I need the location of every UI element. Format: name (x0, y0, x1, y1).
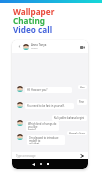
staticText: online (31, 47, 38, 50)
staticText: I'm pleased to introduce myself to you t… (29, 136, 63, 144)
staticText: Hamalu Jison (69, 132, 85, 134)
button[interactable]: Which kind of songs do you like again? (26, 121, 59, 131)
button[interactable]: Hamalu Jison (67, 131, 87, 135)
button[interactable]: Video call (79, 44, 85, 50)
staticText: Chating (13, 15, 45, 26)
button[interactable]: Home (38, 161, 44, 167)
button[interactable]: Back (17, 44, 22, 49)
button[interactable]: Send (79, 153, 85, 159)
button[interactable]: Hi! How are you? (25, 87, 72, 93)
button[interactable]: Hey (78, 85, 87, 89)
button[interactable]: Kuli yakhe bahasa begini (52, 115, 87, 121)
staticText: You need to be fast in yourself. (27, 104, 65, 108)
staticText: Hi! How are you? (27, 88, 48, 92)
staticText: Fine (79, 100, 85, 104)
button[interactable]: Fine (77, 99, 87, 105)
button[interactable]: Recent apps (45, 161, 51, 167)
staticText: Anna Tanya (31, 43, 47, 47)
button[interactable]: I'm pleased to introduce myself to you t… (27, 135, 65, 145)
button[interactable]: Back (30, 161, 36, 167)
staticText: Hey (80, 86, 85, 88)
staticText: Kuli yakhe bahasa begini (54, 116, 85, 120)
button[interactable]: You need to be fast in yourself. (25, 103, 74, 109)
staticText: Wallpaper (13, 6, 55, 17)
staticText: Which kind of songs do you like again? (28, 122, 57, 130)
staticText: Video call (13, 24, 53, 35)
staticText: Type a message (16, 154, 36, 158)
